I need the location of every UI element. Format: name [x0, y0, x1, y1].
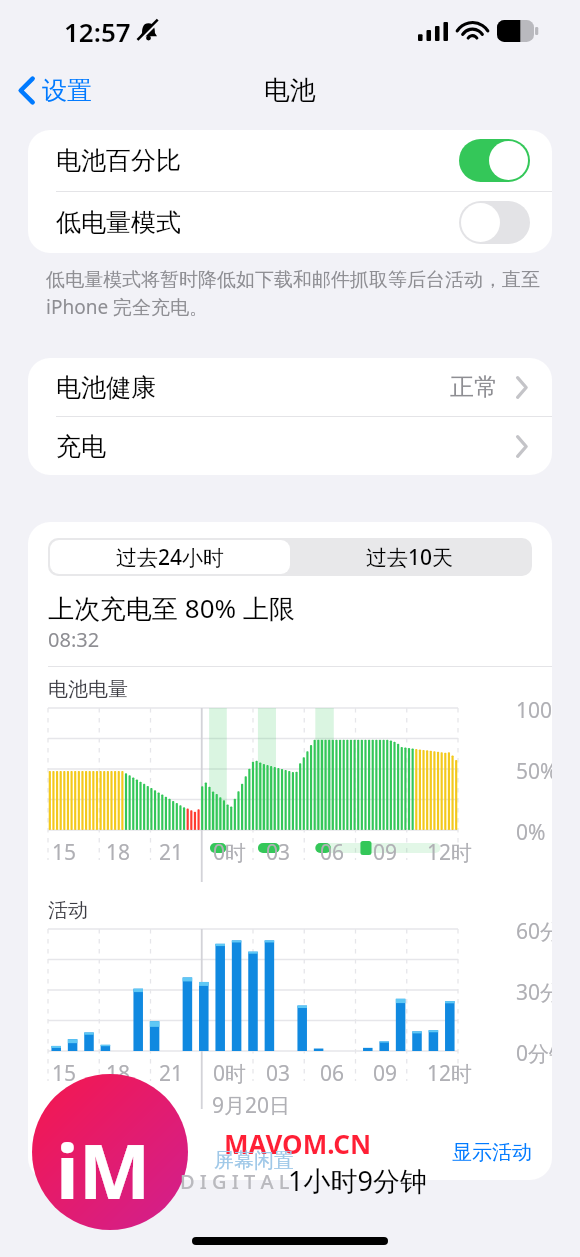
- staticText: App的电池用量: [48, 1139, 186, 1166]
- button[interactable]: 过去10天: [290, 540, 530, 574]
- staticText: 0分钟: [516, 1039, 552, 1068]
- button[interactable]: On: [459, 139, 530, 182]
- other: Battery level chart: [28, 702, 552, 898]
- staticText: 屏幕闲置: [214, 1148, 294, 1173]
- staticText: 过去10天: [366, 543, 454, 572]
- staticText: 电池电量: [48, 677, 128, 702]
- staticText: 显示活动: [452, 1140, 532, 1165]
- button[interactable]: Off: [459, 201, 530, 244]
- staticText: 06: [320, 838, 345, 867]
- button[interactable]: 电池百分比: [28, 130, 552, 191]
- staticText: 电池: [264, 74, 316, 107]
- staticText: 03: [266, 1059, 291, 1088]
- button[interactable]: 过去24小时: [50, 540, 290, 574]
- button[interactable]: 低电量模式: [28, 192, 552, 253]
- staticText: 低电量模式将暂时降低如下载和邮件抓取等后台活动，直至 iPhone 完全充电。: [46, 266, 540, 320]
- button[interactable]: 电池健康: [28, 358, 552, 416]
- staticText: 03: [266, 838, 291, 867]
- staticText: 9月20日: [212, 1091, 291, 1120]
- staticText: 正常: [450, 372, 498, 402]
- staticText: 06: [320, 1059, 345, 1088]
- staticText: D I G I T A L: [180, 1168, 290, 1195]
- staticText: 100%: [516, 696, 552, 725]
- staticText: 21: [159, 838, 184, 867]
- staticText: 设置: [42, 75, 92, 106]
- staticText: 上次充电至 80% 上限: [48, 590, 295, 626]
- button[interactable]: 设置: [12, 70, 98, 111]
- staticText: 过去24小时: [116, 543, 225, 572]
- staticText: 电池百分比: [56, 145, 181, 176]
- button[interactable]: 充电: [28, 417, 552, 475]
- staticText: 30分钟: [516, 978, 552, 1007]
- staticText: 活动: [48, 898, 88, 923]
- staticText: 15: [52, 838, 77, 867]
- staticText: 低电量模式: [56, 207, 181, 238]
- staticText: 08:32: [48, 626, 100, 653]
- staticText: MAVOM.CN: [224, 1126, 372, 1161]
- staticText: 0时: [213, 1059, 247, 1088]
- staticText: 18: [106, 838, 131, 867]
- staticText: 09: [373, 838, 398, 867]
- staticText: 0%: [516, 818, 546, 847]
- staticText: 09: [373, 1059, 398, 1088]
- staticText: 50%: [516, 757, 552, 786]
- staticText: 12时: [427, 1059, 473, 1088]
- staticText: iM: [56, 1118, 151, 1222]
- staticText: 0时: [213, 838, 247, 867]
- button[interactable]: 显示活动: [452, 1140, 532, 1165]
- staticText: 18: [106, 1059, 131, 1088]
- staticText: 60分钟: [516, 917, 552, 946]
- staticText: 电池健康: [56, 372, 156, 403]
- staticText: 15: [52, 1059, 77, 1088]
- other: Activity chart: [28, 923, 552, 1109]
- staticText: 21: [159, 1059, 184, 1088]
- staticText: 1小时9分钟: [288, 1162, 427, 1199]
- staticText: 12:57: [64, 14, 131, 49]
- staticText: 12时: [427, 838, 473, 867]
- staticText: 充电: [56, 431, 106, 462]
